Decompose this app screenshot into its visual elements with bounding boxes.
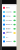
button[interactable]: Sounds: [2, 10, 16, 14]
button[interactable]: Privacy: [2, 39, 16, 43]
staticText: Privacy: [6, 40, 12, 42]
staticText: Focus: [6, 15, 11, 17]
staticText: Alerts: [6, 7, 10, 9]
button[interactable]: Screen: [2, 18, 16, 22]
staticText: Screen: [6, 19, 12, 21]
staticText: Siri: [6, 36, 8, 38]
button[interactable]: Focus: [2, 14, 16, 18]
button[interactable]: Wallpaper: [2, 31, 16, 35]
button[interactable]: Display: [2, 27, 16, 31]
staticText: General: [6, 24, 12, 25]
button[interactable]: Alerts: [2, 6, 16, 10]
button[interactable]: Siri: [2, 35, 16, 39]
button[interactable]: General: [2, 22, 16, 27]
staticText: Sounds: [6, 11, 12, 13]
staticText: Display: [6, 28, 11, 30]
staticText: Wallpaper: [6, 31, 12, 35]
